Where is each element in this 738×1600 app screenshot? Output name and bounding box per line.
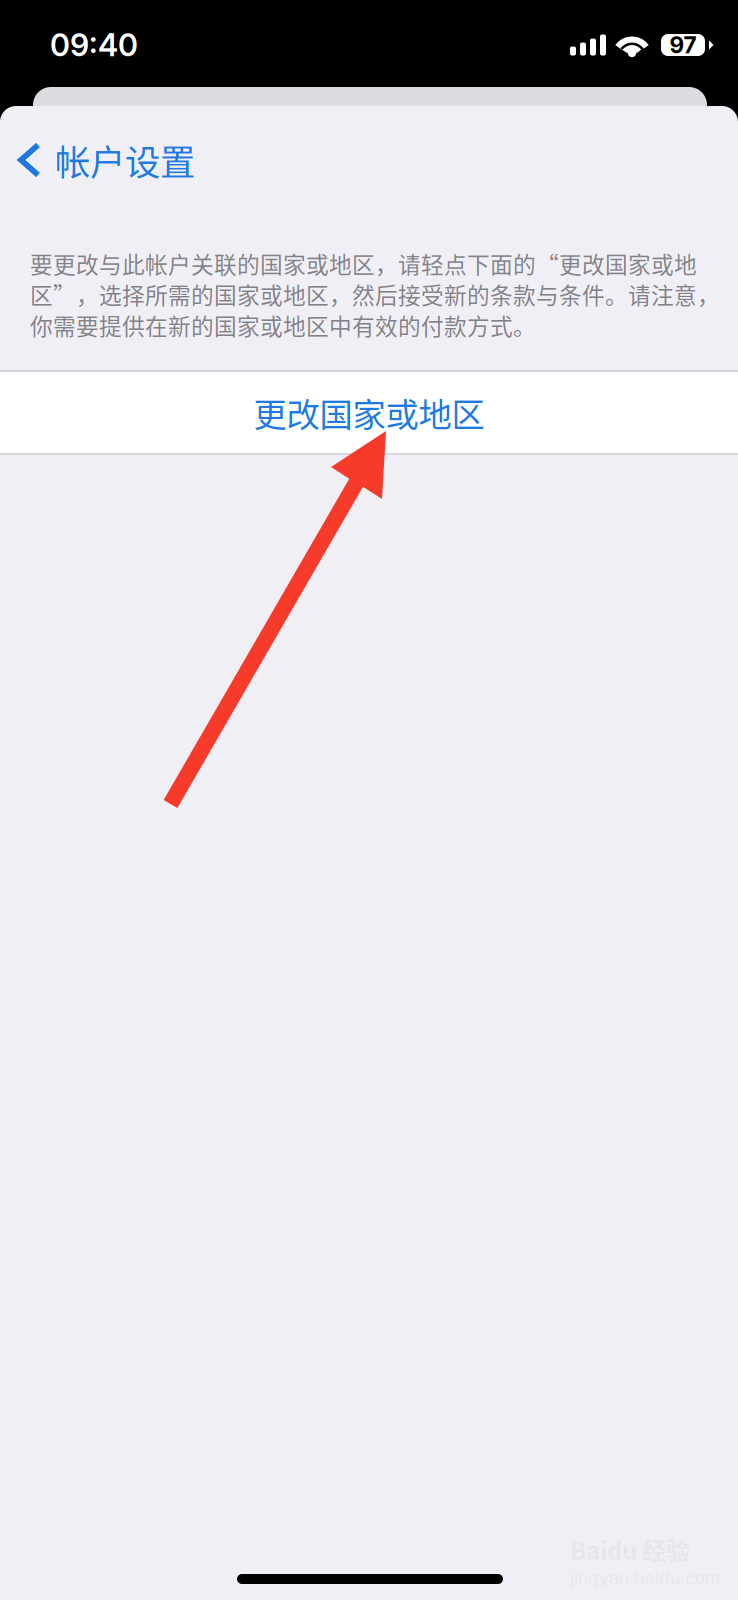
- staticText: 97: [669, 31, 696, 59]
- staticText: jingyan.baidu.com: [570, 1568, 720, 1589]
- staticText: 更改国家或地区: [253, 388, 484, 437]
- button[interactable]: 帐户设置: [0, 130, 738, 190]
- staticText: Baidu 经验: [570, 1532, 690, 1567]
- button[interactable]: 更改国家或地区: [0, 372, 738, 453]
- staticText: 要更改与此帐户关联的国家或地区，请轻点下面的“更改国家或地区”，选择所需的国家或…: [30, 247, 720, 341]
- staticText: 帐户设置: [55, 134, 195, 186]
- staticText: 09:40: [50, 26, 138, 63]
